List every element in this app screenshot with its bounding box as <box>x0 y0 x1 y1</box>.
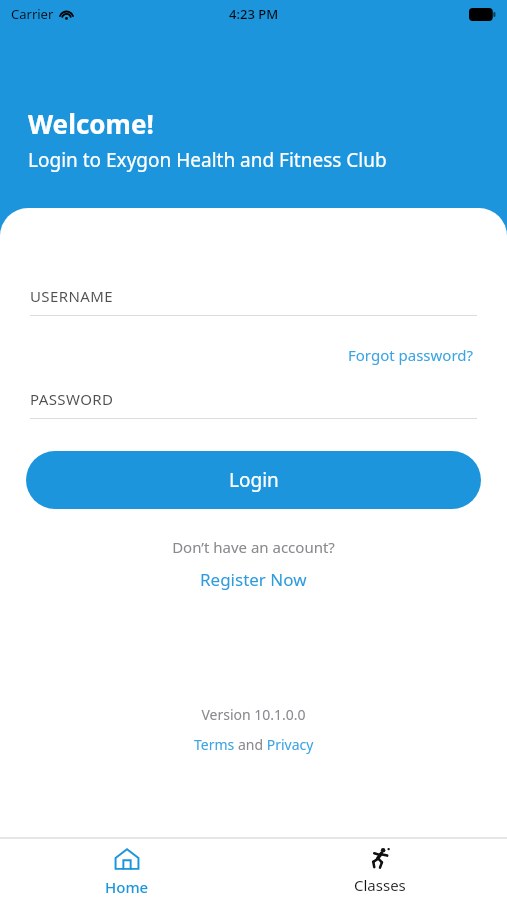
other: Classes <box>368 846 392 870</box>
staticText: Home <box>105 877 149 897</box>
staticText: Register Now <box>200 568 307 591</box>
button[interactable]: Login <box>26 451 481 509</box>
button[interactable]: Register Now <box>194 566 313 593</box>
button[interactable]: PASSWORD <box>30 389 477 419</box>
button[interactable]: Home <box>0 839 253 897</box>
staticText: Forgot password? <box>348 345 474 365</box>
staticText: Don’t have an account? <box>0 537 507 557</box>
other: Home <box>114 846 140 872</box>
staticText: Classes <box>354 875 406 895</box>
staticText: Version 10.1.0.0 <box>0 705 507 724</box>
staticText: Welcome! <box>28 106 154 141</box>
button[interactable]: Classes <box>253 839 507 895</box>
button[interactable]: USERNAME <box>30 286 477 316</box>
button[interactable]: Forgot password? <box>344 341 478 369</box>
staticText: Login <box>229 467 279 493</box>
staticText: 4:23 PM <box>229 5 279 23</box>
staticText: USERNAME <box>30 286 114 306</box>
staticText: Carrier <box>11 5 54 23</box>
button[interactable]: Terms and Privacy <box>190 733 318 756</box>
staticText: PASSWORD <box>30 389 114 409</box>
staticText: Login to Exygon Health and Fitness Club <box>28 147 387 173</box>
staticText: Terms and Privacy <box>194 735 314 754</box>
